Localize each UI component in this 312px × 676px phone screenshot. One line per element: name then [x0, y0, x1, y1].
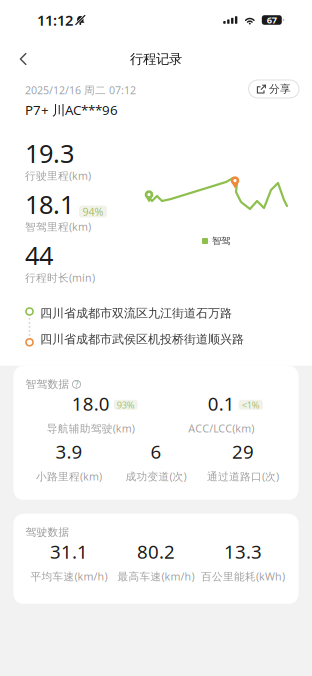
staticText: 67 — [267, 14, 277, 26]
staticText: 19.3 — [25, 136, 74, 170]
staticText: 80.2 — [137, 539, 175, 564]
staticText: 2025/12/16 周二 07:12 — [25, 83, 136, 97]
staticText: 导航辅助驾驶(km) — [47, 421, 135, 435]
staticText: 13.3 — [224, 539, 262, 564]
staticText: 6 — [150, 439, 161, 464]
button[interactable]: 分享 — [249, 80, 299, 98]
staticText: 31.1 — [50, 539, 88, 564]
staticText: 行程记录 — [130, 51, 182, 67]
staticText: 智驾 — [212, 235, 230, 247]
staticText: 四川省成都市武侯区机投桥街道顺兴路 — [40, 332, 244, 347]
staticText: <1% — [242, 399, 260, 411]
staticText: 智驾数据 — [25, 378, 69, 391]
staticText: 最高车速(km/h) — [117, 569, 194, 583]
staticText: 3.9 — [55, 439, 82, 464]
staticText: 44 — [25, 238, 53, 272]
staticText: 分享 — [269, 82, 291, 95]
staticText: 行驶里程(km) — [25, 168, 91, 183]
staticText: P7+ 川AC***96 — [25, 101, 118, 119]
staticText: ACC/LCC(km) — [188, 421, 254, 435]
staticText: 0.1 — [208, 391, 235, 416]
staticText: 平均车速(km/h) — [30, 569, 107, 583]
staticText: 93% — [117, 399, 135, 411]
staticText: 18.0 — [72, 391, 110, 416]
staticText: 小路里程(km) — [36, 469, 102, 483]
staticText: 29 — [232, 439, 254, 464]
staticText: 驾驶数据 — [25, 526, 69, 539]
staticText: 成功变道(次) — [125, 469, 186, 483]
staticText: 通过道路口(次) — [207, 469, 279, 483]
staticText: 18.1 — [25, 187, 74, 221]
staticText: 94% — [82, 204, 103, 219]
staticText: ? — [75, 379, 78, 390]
staticText: 行程时长(min) — [25, 270, 95, 285]
staticText: 11:12 — [37, 10, 73, 30]
button[interactable]: 返回 — [6, 40, 40, 78]
staticText: 智驾里程(km) — [25, 219, 91, 234]
staticText: 四川省成都市双流区九江街道石万路 — [40, 306, 232, 321]
staticText: 百公里能耗(kWh) — [201, 569, 285, 583]
